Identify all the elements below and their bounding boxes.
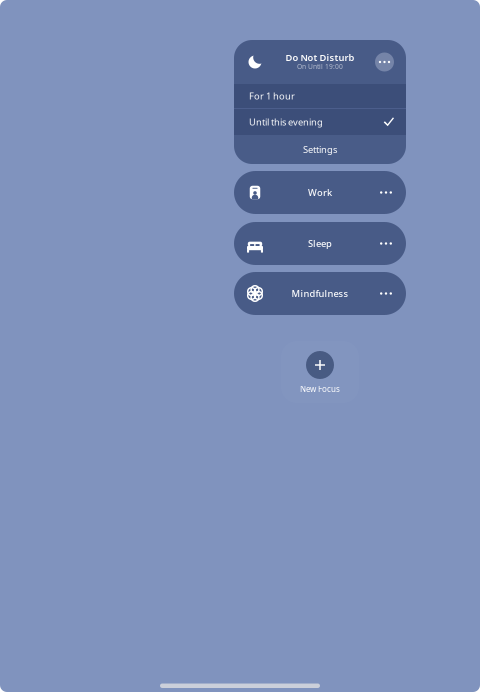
- button[interactable]: New Focus: [281, 341, 359, 403]
- button[interactable]: Until this evening: [234, 109, 406, 135]
- button[interactable]: For 1 hour: [234, 84, 406, 108]
- staticText: Mindfulness: [291, 287, 348, 300]
- staticText: On Until 19:00: [297, 62, 343, 71]
- staticText: Sleep: [308, 237, 332, 250]
- staticText: New Focus: [300, 384, 340, 394]
- staticText: Work: [308, 186, 332, 199]
- staticText: Do Not Disturb: [285, 51, 354, 64]
- staticText: For 1 hour: [249, 90, 295, 102]
- button[interactable]: Work: [234, 171, 406, 214]
- staticText: Until this evening: [249, 116, 323, 128]
- button[interactable]: Settings: [234, 135, 406, 164]
- button[interactable]: Mindfulness: [234, 272, 406, 315]
- button[interactable]: Sleep: [234, 222, 406, 265]
- staticText: Settings: [303, 143, 337, 156]
- button[interactable]: Do Not Disturb options: [375, 52, 394, 71]
